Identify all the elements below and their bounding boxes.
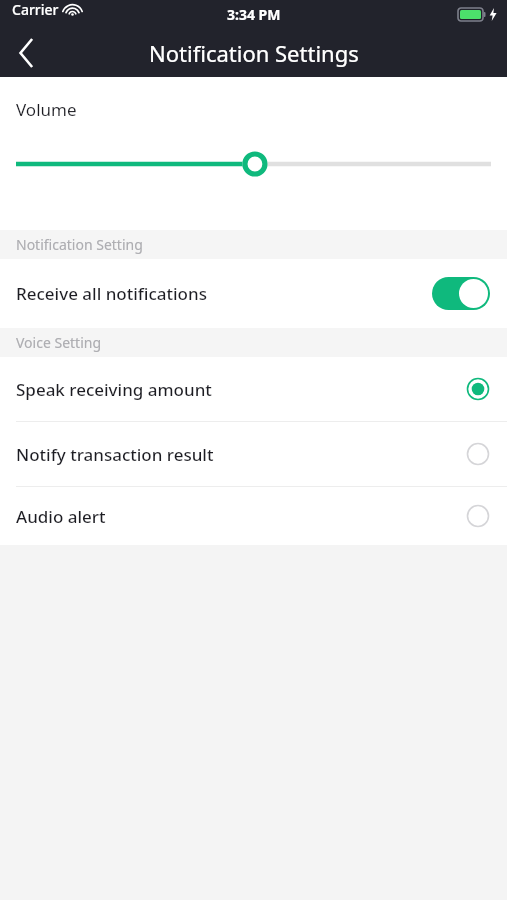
button[interactable]: Speak receiving amount xyxy=(0,357,507,421)
staticText: Voice Setting xyxy=(16,333,102,352)
staticText: Carrier xyxy=(12,0,59,19)
staticText: 3:34 PM xyxy=(227,5,281,24)
button[interactable]: Receive all notifications xyxy=(0,259,507,328)
staticText: Notification Setting xyxy=(16,235,143,254)
button[interactable]: Audio alert xyxy=(0,487,507,545)
button[interactable]: Back xyxy=(0,28,52,77)
staticText: Volume xyxy=(16,98,77,121)
staticText: Receive all notifications xyxy=(16,282,207,305)
staticText: Notify transaction result xyxy=(16,443,214,466)
button[interactable] xyxy=(0,149,507,179)
button[interactable]: Notify transaction result xyxy=(0,422,507,486)
staticText: Notification Settings xyxy=(149,38,359,68)
staticText: Audio alert xyxy=(16,505,106,528)
staticText: Speak receiving amount xyxy=(16,378,212,401)
